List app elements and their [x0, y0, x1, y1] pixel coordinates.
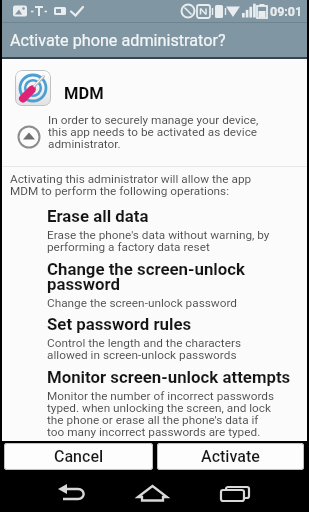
staticText: Monitor screen-unlock attempts — [47, 367, 291, 387]
button[interactable] — [122, 472, 184, 512]
button[interactable]: Activate — [157, 443, 304, 470]
staticText: In order to securely manage your device,… — [48, 113, 259, 150]
staticText: Erase the phone's data without warning, … — [47, 228, 270, 253]
button[interactable]: Cancel — [4, 443, 153, 470]
button[interactable] — [41, 472, 103, 512]
button[interactable]: MDM — [15, 70, 55, 106]
staticText: Activate — [201, 447, 260, 466]
staticText: Erase all data — [47, 206, 149, 226]
button[interactable]: Monitor screen-unlock attempts — [47, 367, 291, 438]
staticText: Activate phone administrator? — [10, 31, 226, 50]
staticText: Activating this administrator will allow… — [10, 172, 252, 197]
button[interactable] — [203, 472, 265, 512]
button[interactable]: Set password rules — [47, 314, 241, 361]
staticText: Change the screen-unlock password — [47, 296, 237, 310]
staticText: Set password rules — [47, 314, 192, 334]
staticText: MDM — [64, 84, 104, 103]
button[interactable]: Erase all data — [47, 206, 270, 253]
staticText: Monitor the number of incorrect password… — [47, 389, 275, 438]
staticText: Cancel — [54, 447, 104, 466]
staticText: 09:01 — [270, 4, 303, 19]
staticText: Change the screen-unlock password — [47, 259, 246, 294]
button[interactable]: Change the screen-unlock password — [47, 259, 246, 310]
staticText: Control the length and the characters al… — [47, 336, 241, 361]
